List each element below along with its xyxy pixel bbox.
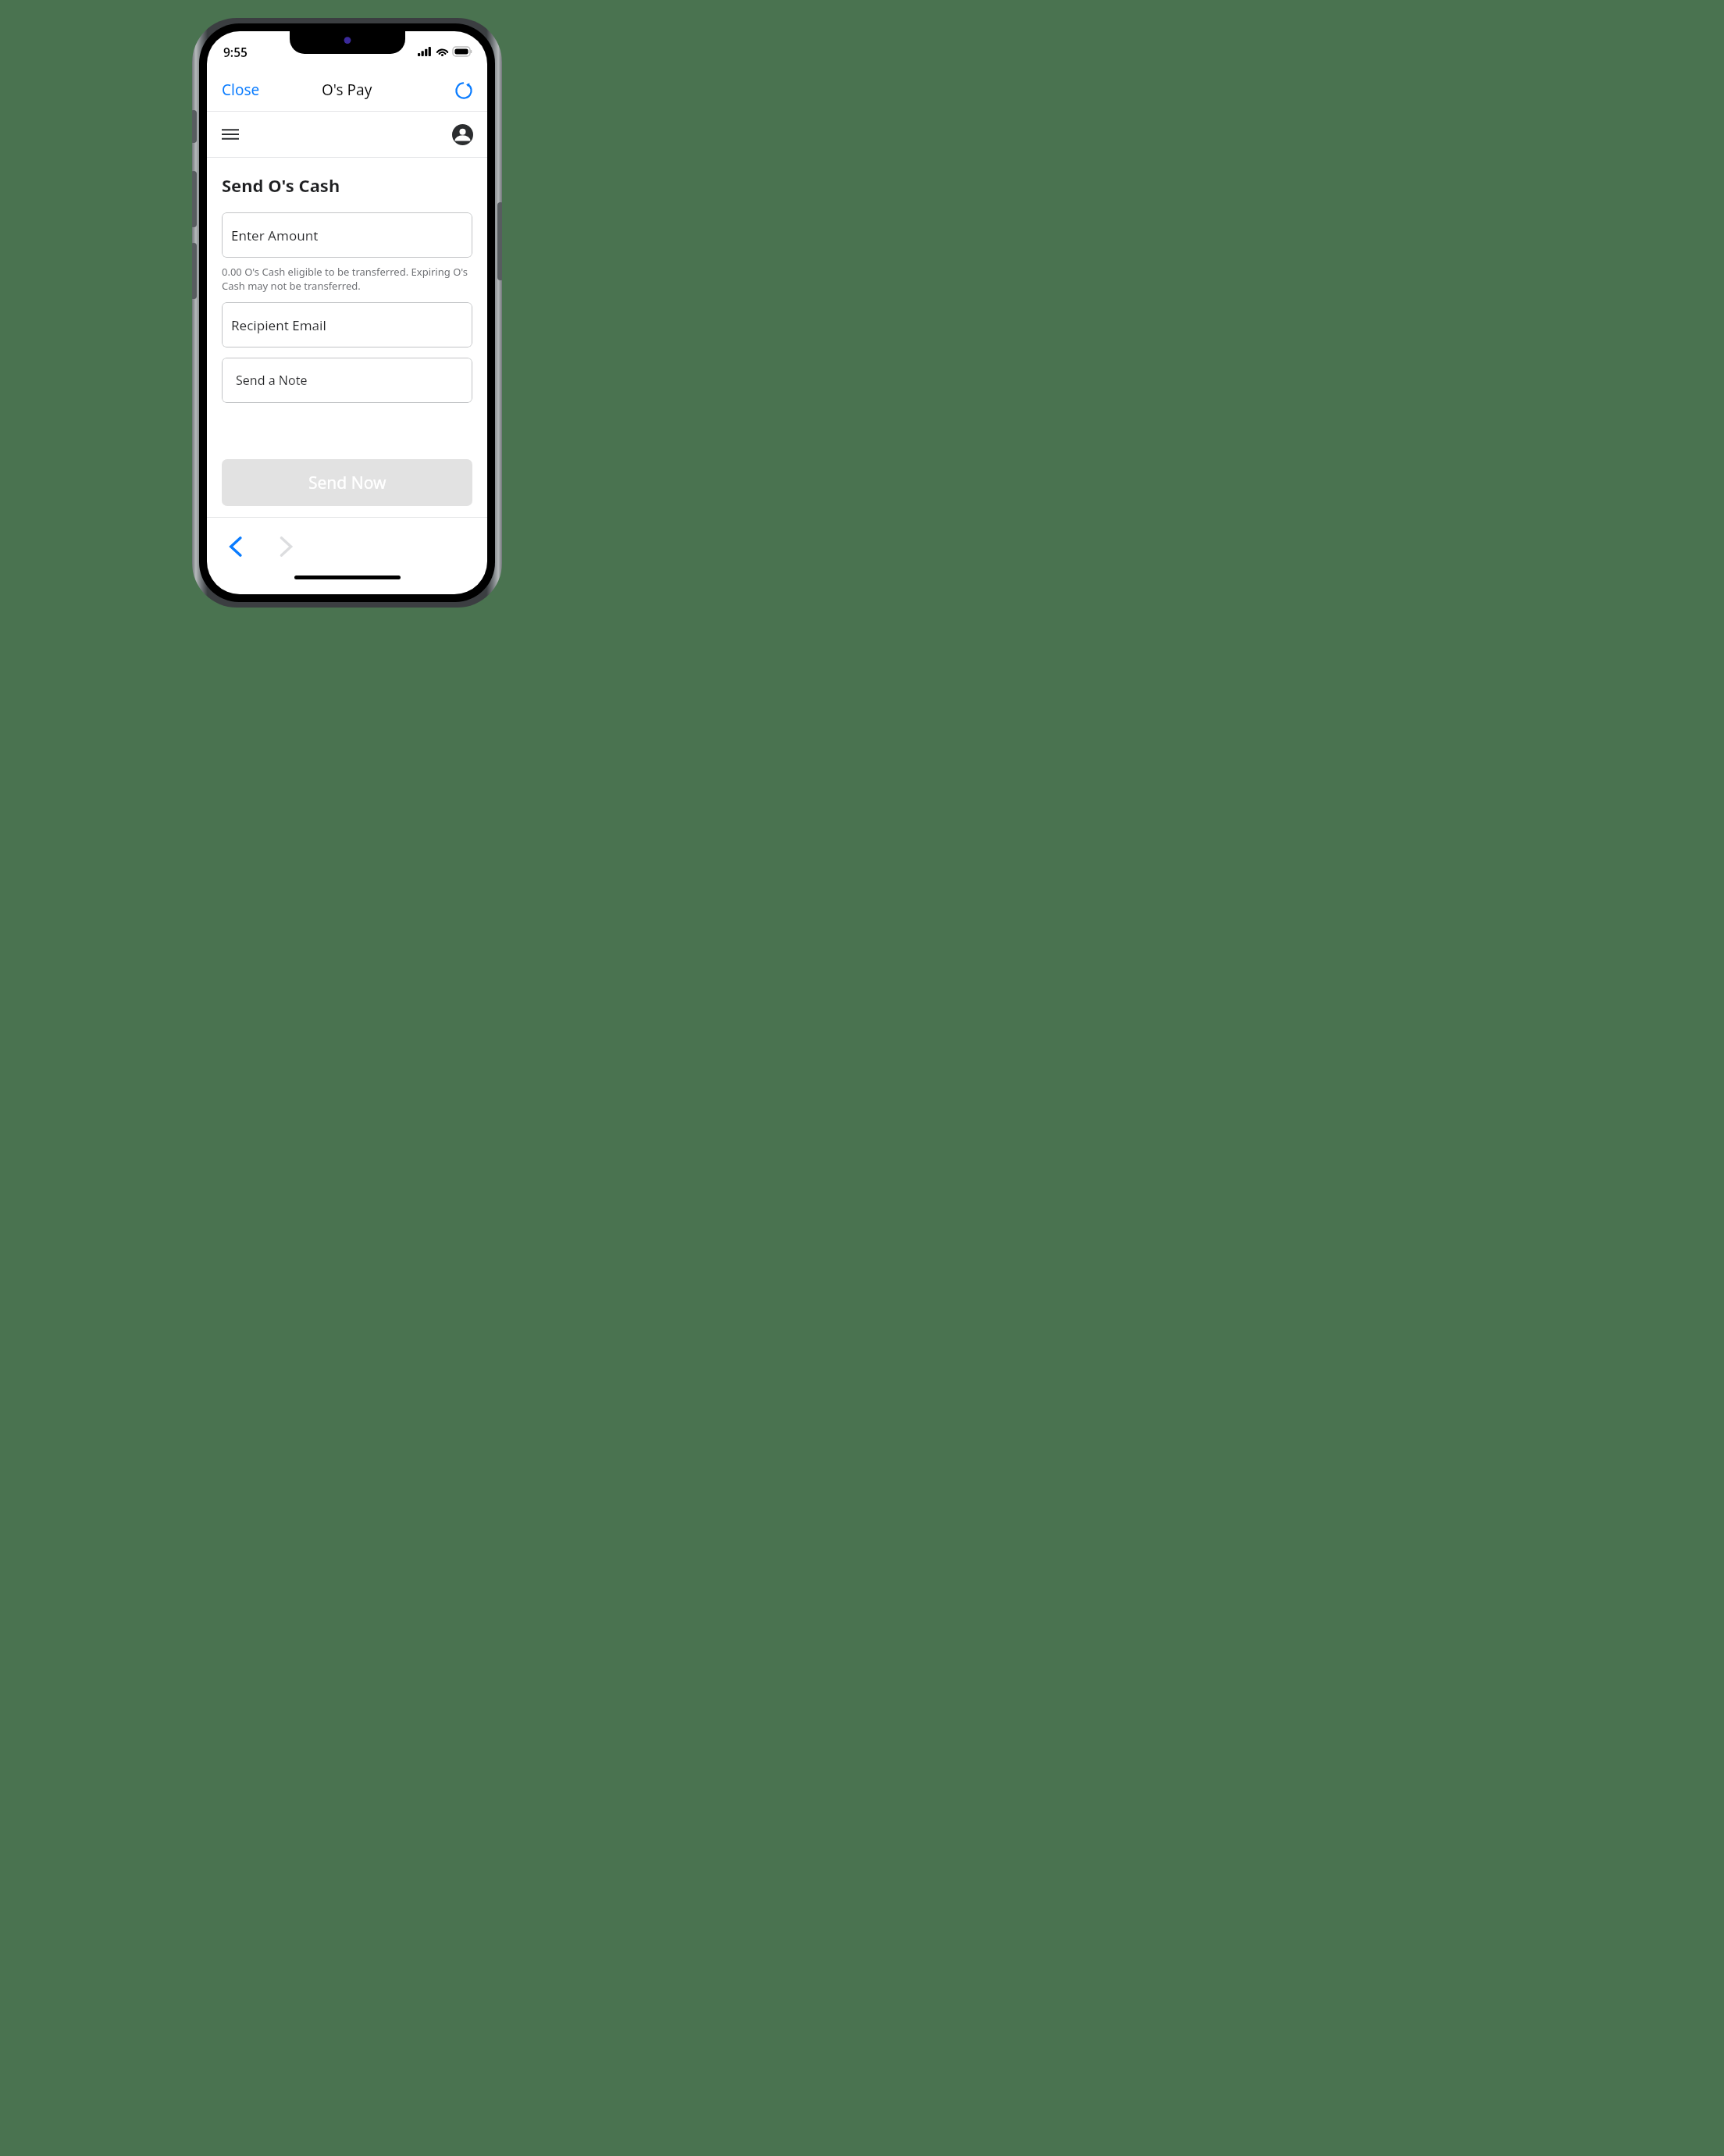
- button[interactable]: Send a Note: [222, 358, 472, 403]
- button[interactable]: Recipient Email: [222, 302, 472, 347]
- staticText: Recipient Email: [231, 316, 326, 334]
- button[interactable]: Refresh: [440, 74, 487, 105]
- staticText: Send a Note: [236, 372, 308, 389]
- staticText: Enter Amount: [231, 226, 319, 244]
- staticText: 0.00 O's Cash eligible to be transferred…: [222, 265, 472, 293]
- staticText: Close: [222, 80, 260, 100]
- staticText: Send Now: [308, 472, 386, 494]
- button[interactable]: Menu: [207, 118, 254, 151]
- staticText: O's Pay: [322, 80, 372, 100]
- button[interactable]: Send Now: [222, 459, 472, 506]
- staticText: Send O's Cash: [222, 173, 340, 197]
- button[interactable]: Enter Amount: [222, 212, 472, 258]
- staticText: 9:55: [223, 44, 248, 60]
- button[interactable]: Close: [207, 73, 275, 107]
- button[interactable]: Forward: [269, 526, 304, 567]
- button[interactable]: Account: [438, 116, 487, 153]
- button[interactable]: Back: [218, 526, 253, 567]
